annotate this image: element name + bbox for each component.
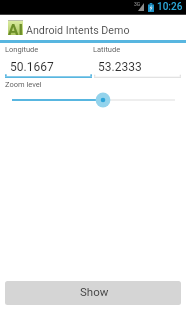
staticText: Show (80, 285, 109, 298)
staticText: Zoom level (5, 80, 42, 89)
button[interactable]: Show (5, 281, 181, 305)
button[interactable] (5, 70, 92, 78)
staticText: 53.2333 (98, 60, 142, 74)
staticText: AI (8, 21, 23, 36)
button[interactable] (94, 70, 181, 78)
staticText: Longitude (5, 45, 39, 54)
staticText: 50.1667 (10, 60, 54, 74)
staticText: 10:26 (157, 1, 183, 13)
staticText: 3G (134, 1, 141, 7)
button[interactable]: Zoom level slider (0, 90, 186, 110)
staticText: Android Intents Demo (26, 24, 130, 37)
staticText: Latitude (93, 45, 121, 54)
